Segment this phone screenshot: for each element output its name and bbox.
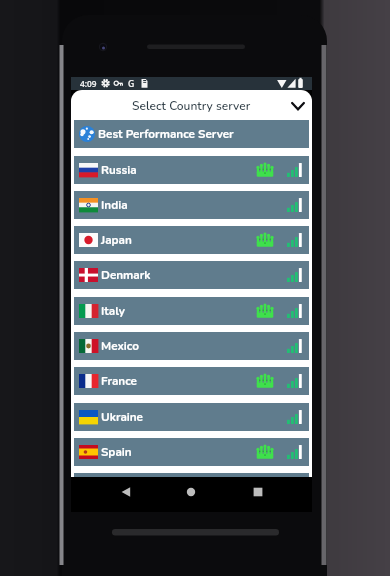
button[interactable]: Russia [74, 156, 309, 184]
staticText: G [128, 78, 135, 90]
button[interactable]: France [74, 367, 309, 395]
staticText: Mexico [101, 338, 139, 354]
button[interactable]: Home [179, 480, 203, 504]
staticText: Best Performance Server [98, 126, 234, 142]
staticText: India [101, 197, 128, 213]
other: Collapse [290, 98, 306, 114]
staticText: France [101, 373, 137, 389]
staticText: 4:09 [80, 78, 97, 89]
staticText: Select Country server [132, 98, 251, 114]
button[interactable]: Select Country server [71, 90, 312, 120]
button[interactable]: Ukraine [74, 403, 309, 431]
button[interactable]: Italy [74, 297, 309, 325]
staticText: Spain [101, 444, 132, 460]
button[interactable]: Best Performance Server [74, 120, 309, 148]
button[interactable]: Spain [74, 438, 309, 466]
staticText: Japan [101, 232, 132, 248]
button[interactable]: India [74, 191, 309, 219]
button[interactable]: Japan [74, 226, 309, 254]
staticText: Ukraine [101, 409, 143, 425]
button[interactable]: Recent apps [246, 480, 270, 504]
staticText: Denmark [101, 267, 151, 283]
button[interactable]: Back [114, 480, 138, 504]
staticText: Italy [101, 303, 125, 319]
button[interactable]: Denmark [74, 261, 309, 289]
button[interactable]: Mexico [74, 332, 309, 360]
staticText: Russia [101, 162, 137, 178]
